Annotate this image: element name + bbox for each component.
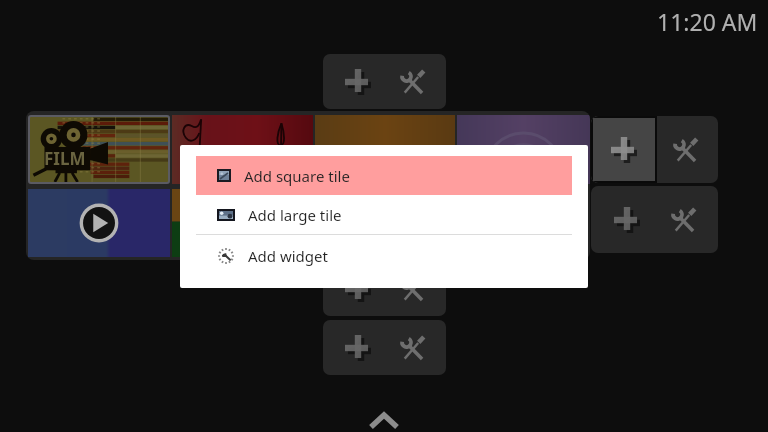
button[interactable] (457, 115, 590, 184)
button[interactable]: Settings (384, 54, 446, 109)
staticText: Add widget (248, 246, 328, 266)
button[interactable]: Add large tile (196, 195, 572, 234)
button[interactable]: Add (323, 54, 384, 109)
button[interactable]: Add (323, 320, 384, 375)
staticText: FILM (44, 147, 86, 170)
button[interactable]: Add (591, 186, 654, 253)
button[interactable] (172, 189, 182, 257)
staticText: Add large tile (248, 205, 342, 225)
button[interactable]: Settings (384, 320, 446, 375)
button[interactable]: Settings (384, 261, 446, 316)
button[interactable]: Expand (352, 404, 416, 432)
button[interactable]: Settings (654, 186, 718, 253)
button[interactable] (172, 115, 313, 184)
button[interactable]: Add widget (196, 235, 572, 277)
button[interactable]: Add square tile (196, 156, 572, 195)
staticText: Add square tile (244, 166, 350, 186)
button[interactable]: FILM (30, 117, 168, 182)
button[interactable]: Add (323, 261, 384, 316)
button[interactable]: Add (591, 116, 657, 183)
staticText: 11:20 AM (657, 6, 758, 37)
button[interactable] (315, 115, 455, 184)
button[interactable] (28, 189, 170, 257)
button[interactable]: Settings (657, 116, 718, 183)
